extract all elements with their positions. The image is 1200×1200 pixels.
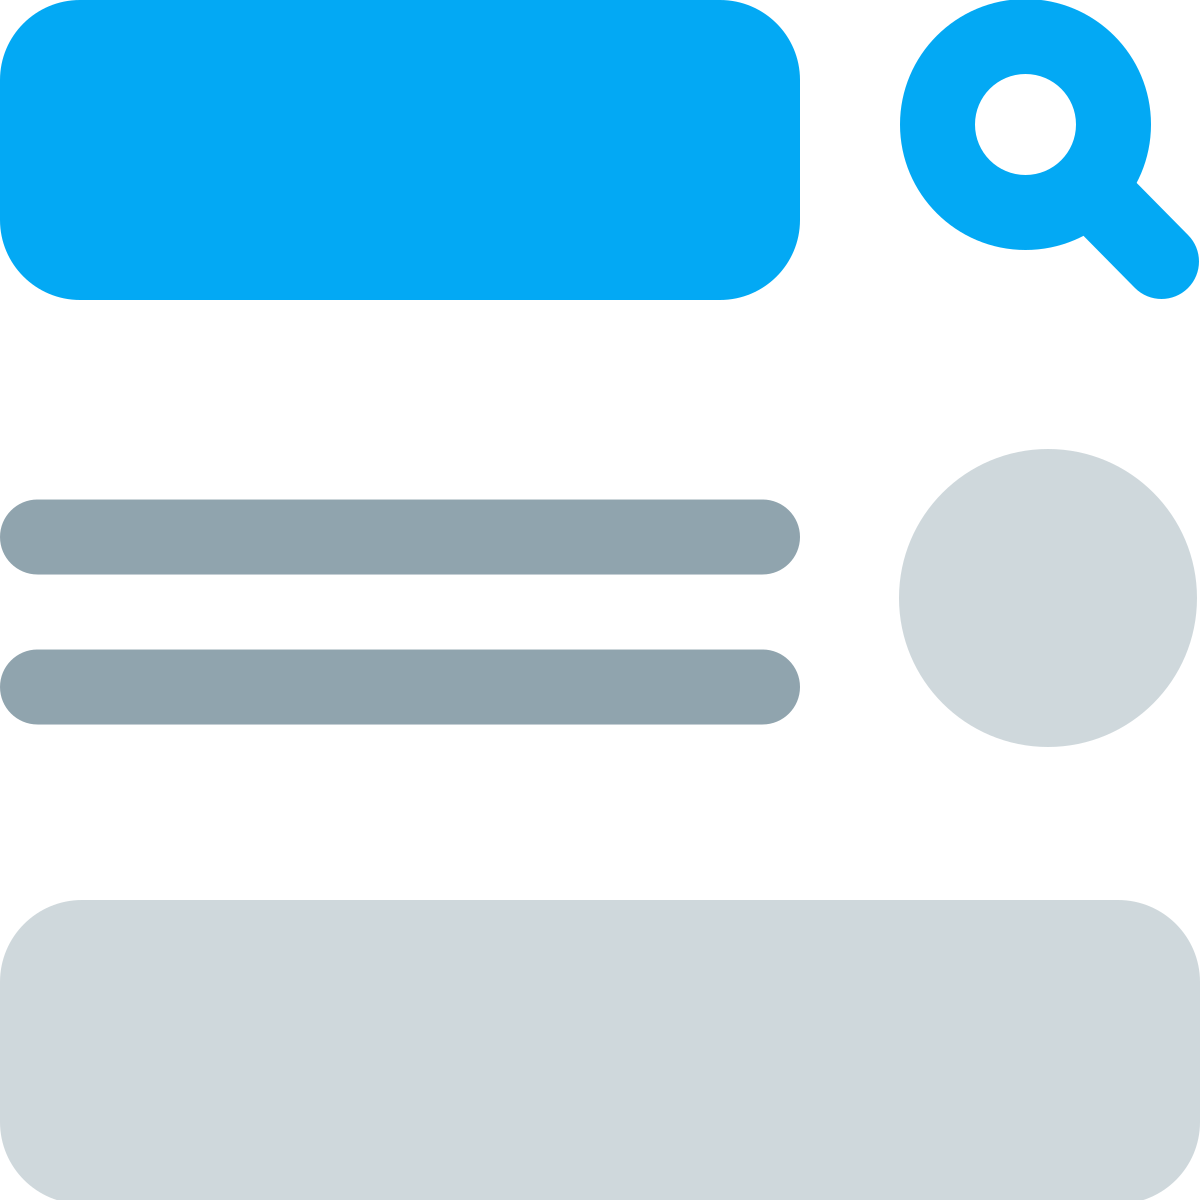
button[interactable]: Search field [0,0,800,300]
button[interactable]: Search [880,0,1200,320]
button[interactable]: Preview [0,900,1200,1200]
button[interactable]: Search result [0,449,1200,749]
